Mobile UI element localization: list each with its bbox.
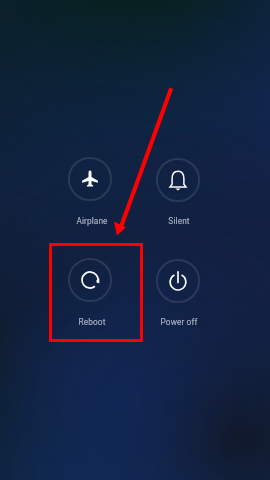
button[interactable]: Power off [156, 259, 200, 303]
staticText: Power off [139, 317, 219, 327]
staticText: Silent [139, 216, 219, 226]
button[interactable]: Reboot [68, 258, 112, 302]
staticText: Reboot [52, 317, 132, 327]
button[interactable]: Silent [156, 158, 200, 202]
button[interactable]: Airplane [68, 157, 112, 201]
staticText: Airplane [52, 216, 132, 226]
